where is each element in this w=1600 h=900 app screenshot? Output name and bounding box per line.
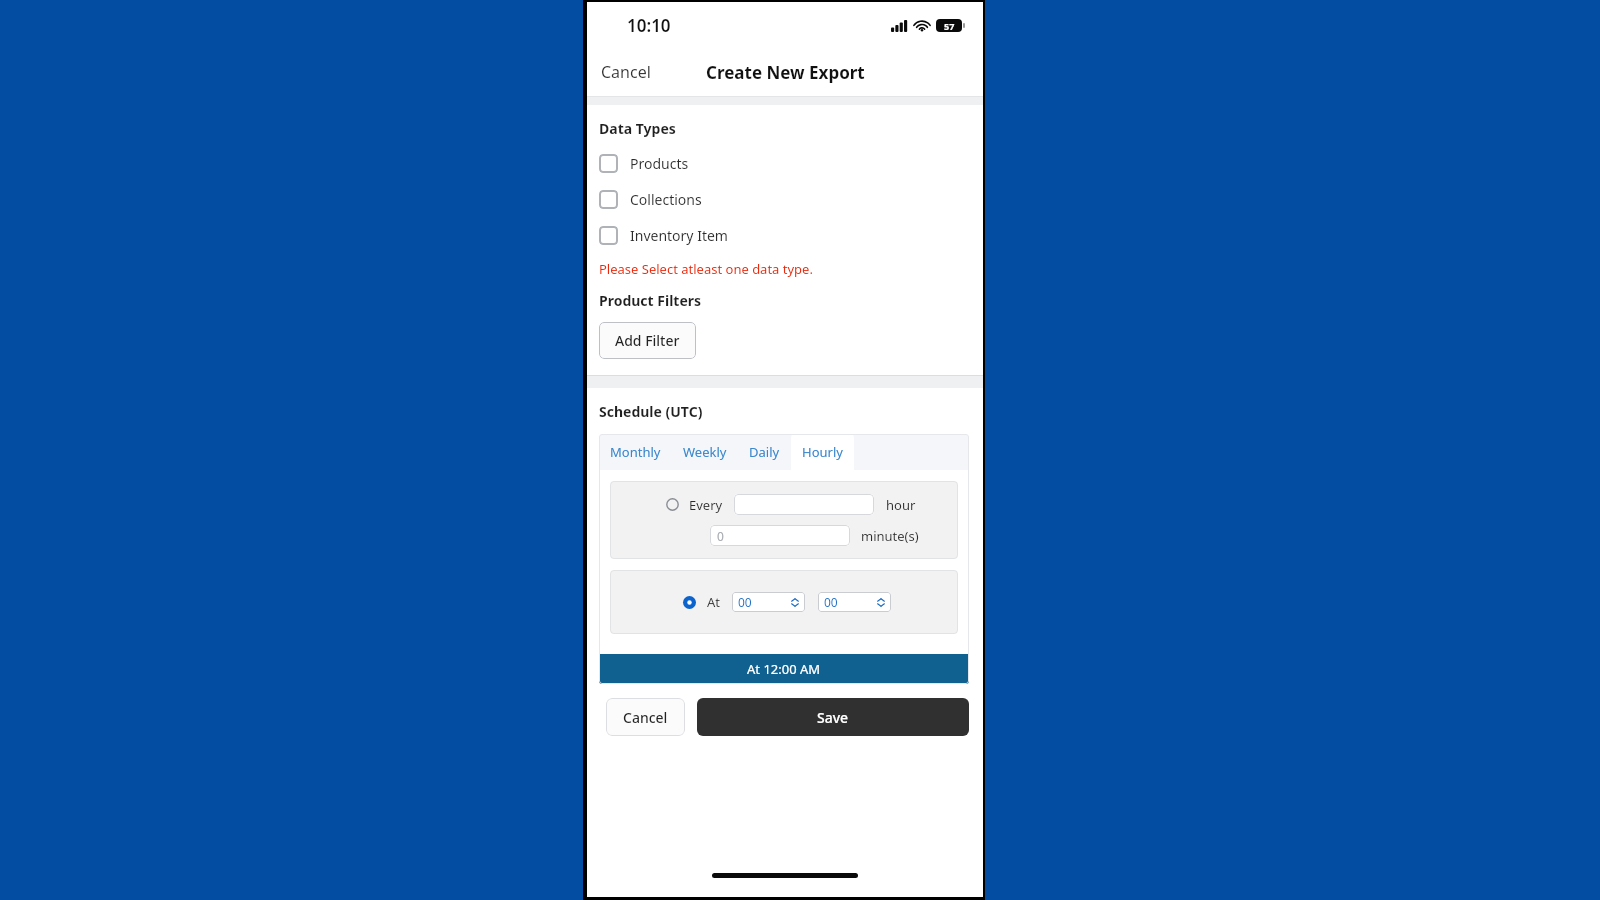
button[interactable]: Add Filter [599, 322, 696, 359]
staticText: Collections [630, 190, 702, 209]
button[interactable]: Cancel [587, 53, 665, 91]
button[interactable]: Every hour option [666, 498, 679, 511]
staticText: 57 [944, 20, 955, 32]
staticText: Please Select atleast one data type. [599, 260, 813, 278]
staticText: Cancel [623, 708, 668, 727]
button[interactable]: At specific time option [683, 596, 696, 609]
staticText: Daily [749, 443, 780, 461]
button[interactable]: Save [697, 698, 969, 736]
button[interactable]: 00 [732, 592, 805, 612]
staticText: Hourly [802, 443, 843, 461]
staticText: Add Filter [615, 331, 680, 350]
staticText: Product Filters [599, 291, 702, 310]
button[interactable]: 00 [818, 592, 891, 612]
staticText: At 12:00 AM [747, 660, 821, 678]
button[interactable]: Daily [738, 434, 791, 470]
button[interactable]: Products [599, 152, 983, 175]
staticText: minute(s) [861, 527, 919, 545]
button[interactable]: Hourly [791, 434, 854, 470]
button[interactable]: Weekly [672, 434, 738, 470]
staticText: 0 [717, 528, 724, 544]
staticText: Inventory Item [630, 226, 728, 245]
button[interactable]: Collections [599, 188, 983, 211]
staticText: Weekly [683, 443, 727, 461]
staticText: 00 [738, 594, 752, 610]
staticText: 10:10 [627, 14, 671, 37]
staticText: Cancel [601, 61, 651, 83]
staticText: hour [886, 496, 916, 514]
staticText: Products [630, 154, 689, 173]
staticText: Monthly [610, 443, 661, 461]
staticText: At [707, 593, 721, 611]
staticText: Data Types [599, 119, 676, 138]
staticText: Every [689, 496, 723, 514]
staticText: Schedule (UTC) [599, 402, 703, 421]
staticText: Save [817, 708, 849, 727]
button[interactable]: Monthly [599, 434, 672, 470]
staticText: Create New Export [706, 61, 865, 84]
button[interactable]: Inventory Item [599, 224, 983, 247]
button[interactable]: Cancel [606, 698, 685, 736]
staticText: 00 [824, 594, 838, 610]
